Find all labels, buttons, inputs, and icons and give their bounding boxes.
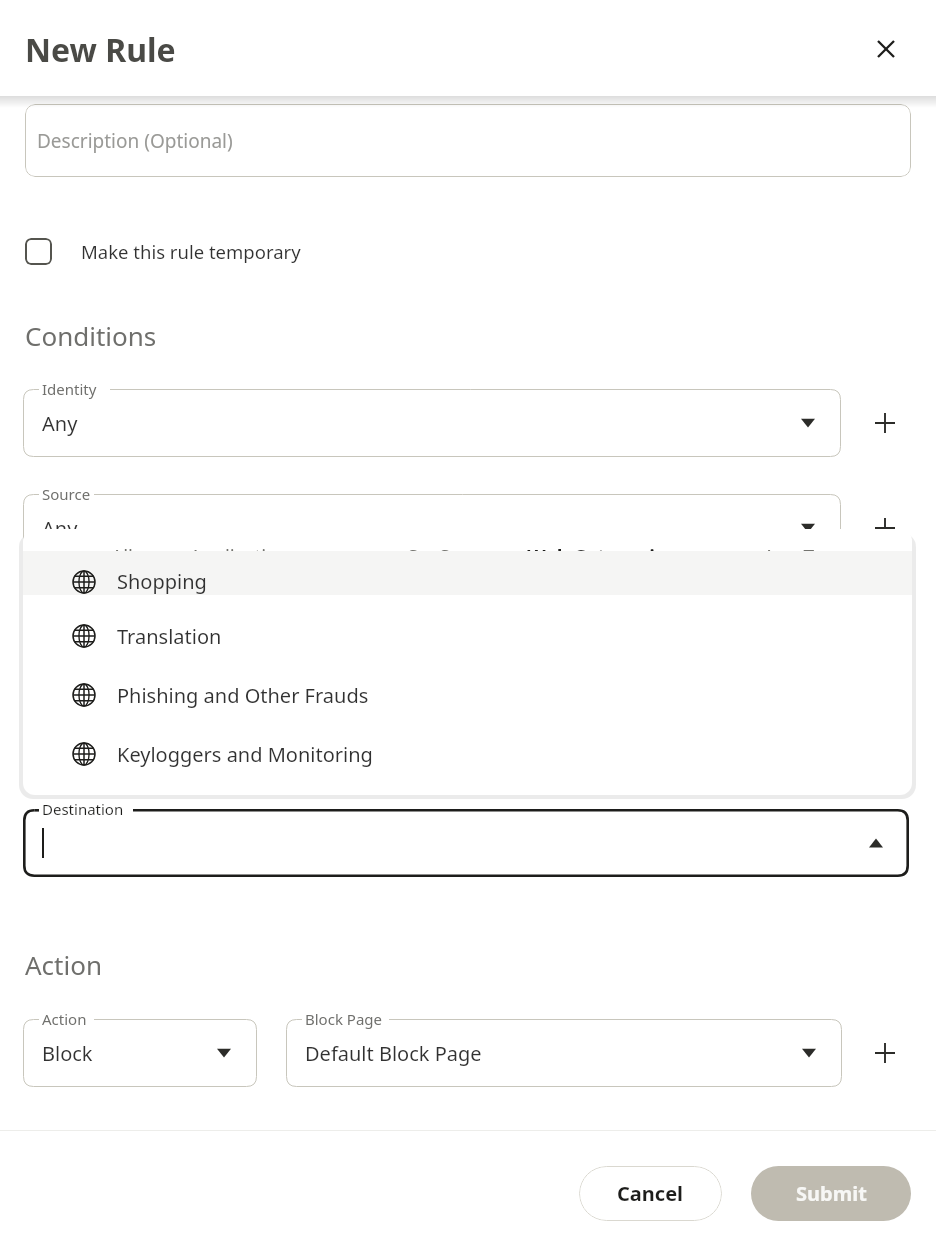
button[interactable]: Web Categories [483,529,720,585]
staticText: App Tags [763,544,844,570]
button[interactable]: All [85,529,159,585]
staticText: New Rule [25,28,176,72]
button[interactable]: Cancel [579,1166,722,1221]
staticText: Action [42,1009,87,1029]
staticText: Action [25,947,102,982]
staticText: Cancel [617,1180,684,1207]
staticText: Any [42,515,78,542]
button[interactable]: Open Block Page options [794,1038,824,1068]
button[interactable]: SaaS [388,529,468,585]
button[interactable]: Open Action options [209,1038,239,1068]
staticText: Block [42,1040,93,1067]
staticText: Conditions [25,318,157,353]
button[interactable]: Phishing and Other Frauds [23,669,912,721]
staticText: Any [42,410,78,437]
button[interactable]: Shopping [23,551,912,595]
staticText: Make this rule temporary [81,239,301,264]
staticText: Phishing and Other Frauds [117,682,369,709]
button[interactable]: Open Identity options [793,408,823,438]
button[interactable]: Make this rule temporary [25,238,301,265]
staticText: Applications [189,544,299,570]
button[interactable]: Add source condition [866,509,904,547]
button[interactable]: Add identity condition [866,404,904,442]
staticText: Keyloggers and Monitoring [117,741,373,768]
button[interactable]: Description (Optional) [25,104,911,177]
staticText: Web Categories [527,544,676,570]
staticText: Identity [42,379,97,399]
staticText: Description (Optional) [37,128,233,154]
staticText: Translation [117,623,222,650]
button[interactable]: Translation [23,610,912,662]
staticText: Block Page [305,1009,382,1029]
button[interactable]: Open Destination options [861,828,891,858]
button[interactable]: Keyloggers and Monitoring [23,728,912,780]
staticText: SaaS [407,544,450,570]
staticText: Source [42,484,91,504]
button[interactable]: Submit [751,1166,911,1221]
staticText: Default Block Page [305,1040,482,1067]
button[interactable]: App Tags [738,529,868,585]
staticText: All [111,544,133,570]
staticText: Shopping [117,568,207,595]
button[interactable]: Open Source options [793,513,823,543]
staticText: Destination [42,799,124,819]
button[interactable]: Applications [169,529,319,585]
button[interactable]: Close [860,23,912,75]
staticText: Submit [796,1180,867,1207]
button[interactable]: Add action [866,1034,904,1072]
